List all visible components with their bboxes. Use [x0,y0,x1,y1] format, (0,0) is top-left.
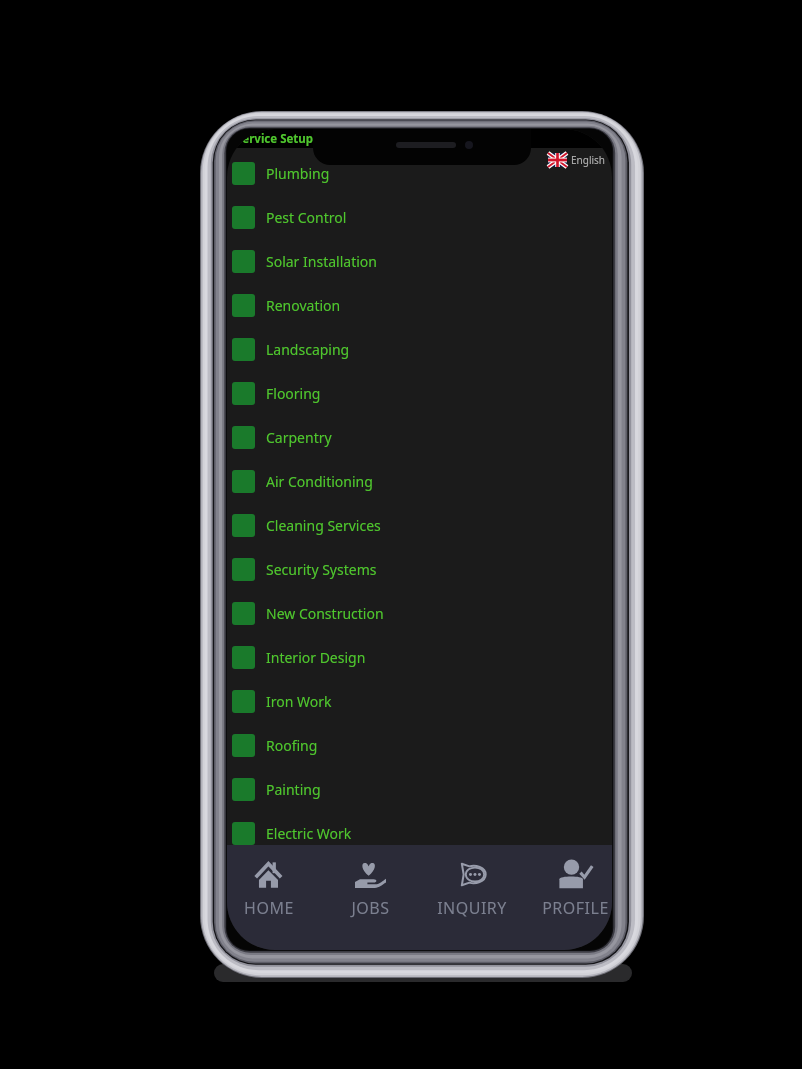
staticText: New Construction [266,604,384,623]
staticText: Renovation [266,296,341,315]
button[interactable]: Roofing [227,723,612,767]
button[interactable]: Pest Control [227,195,612,239]
button[interactable]: Profile [530,861,612,923]
button[interactable]: Cleaning Services [227,503,612,547]
button[interactable]: Interior Design [227,635,612,679]
button[interactable]: English [548,153,606,167]
staticText: Cleaning Services [266,516,381,535]
button[interactable]: New Construction [227,591,612,635]
staticText: JOBS [351,897,390,919]
staticText: Plumbing [266,164,330,183]
button[interactable]: Electric Work [227,811,612,855]
button[interactable]: Iron Work [227,679,612,723]
button[interactable]: Security Systems [227,547,612,591]
staticText: Air Conditioning [266,472,373,491]
staticText: Iron Work [266,692,332,711]
staticText: English [571,153,606,167]
staticText: Carpentry [266,428,332,447]
button[interactable]: Air Conditioning [227,459,612,503]
button[interactable]: Plumbing [227,151,612,195]
staticText: Security Systems [266,560,377,579]
button[interactable]: Flooring [227,371,612,415]
button[interactable]: Renovation [227,283,612,327]
button[interactable]: Painting [227,767,612,811]
button[interactable]: Solar Installation [227,239,612,283]
button[interactable]: Jobs [325,861,415,923]
staticText: Interior Design [266,648,366,667]
staticText: Electric Work [266,824,352,843]
staticText: INQUIRY [437,897,507,919]
staticText: PROFILE [542,897,609,919]
button[interactable]: Landscaping [227,327,612,371]
staticText: Painting [266,780,321,799]
button[interactable]: Home [227,861,314,923]
button[interactable]: Inquiry [427,861,517,923]
staticText: Landscaping [266,340,350,359]
staticText: Service Setup [236,131,314,147]
staticText: HOME [244,897,294,919]
staticText: Pest Control [266,208,347,227]
staticText: Solar Installation [266,252,377,271]
staticText: Flooring [266,384,321,403]
staticText: Roofing [266,736,318,755]
button[interactable]: Carpentry [227,415,612,459]
